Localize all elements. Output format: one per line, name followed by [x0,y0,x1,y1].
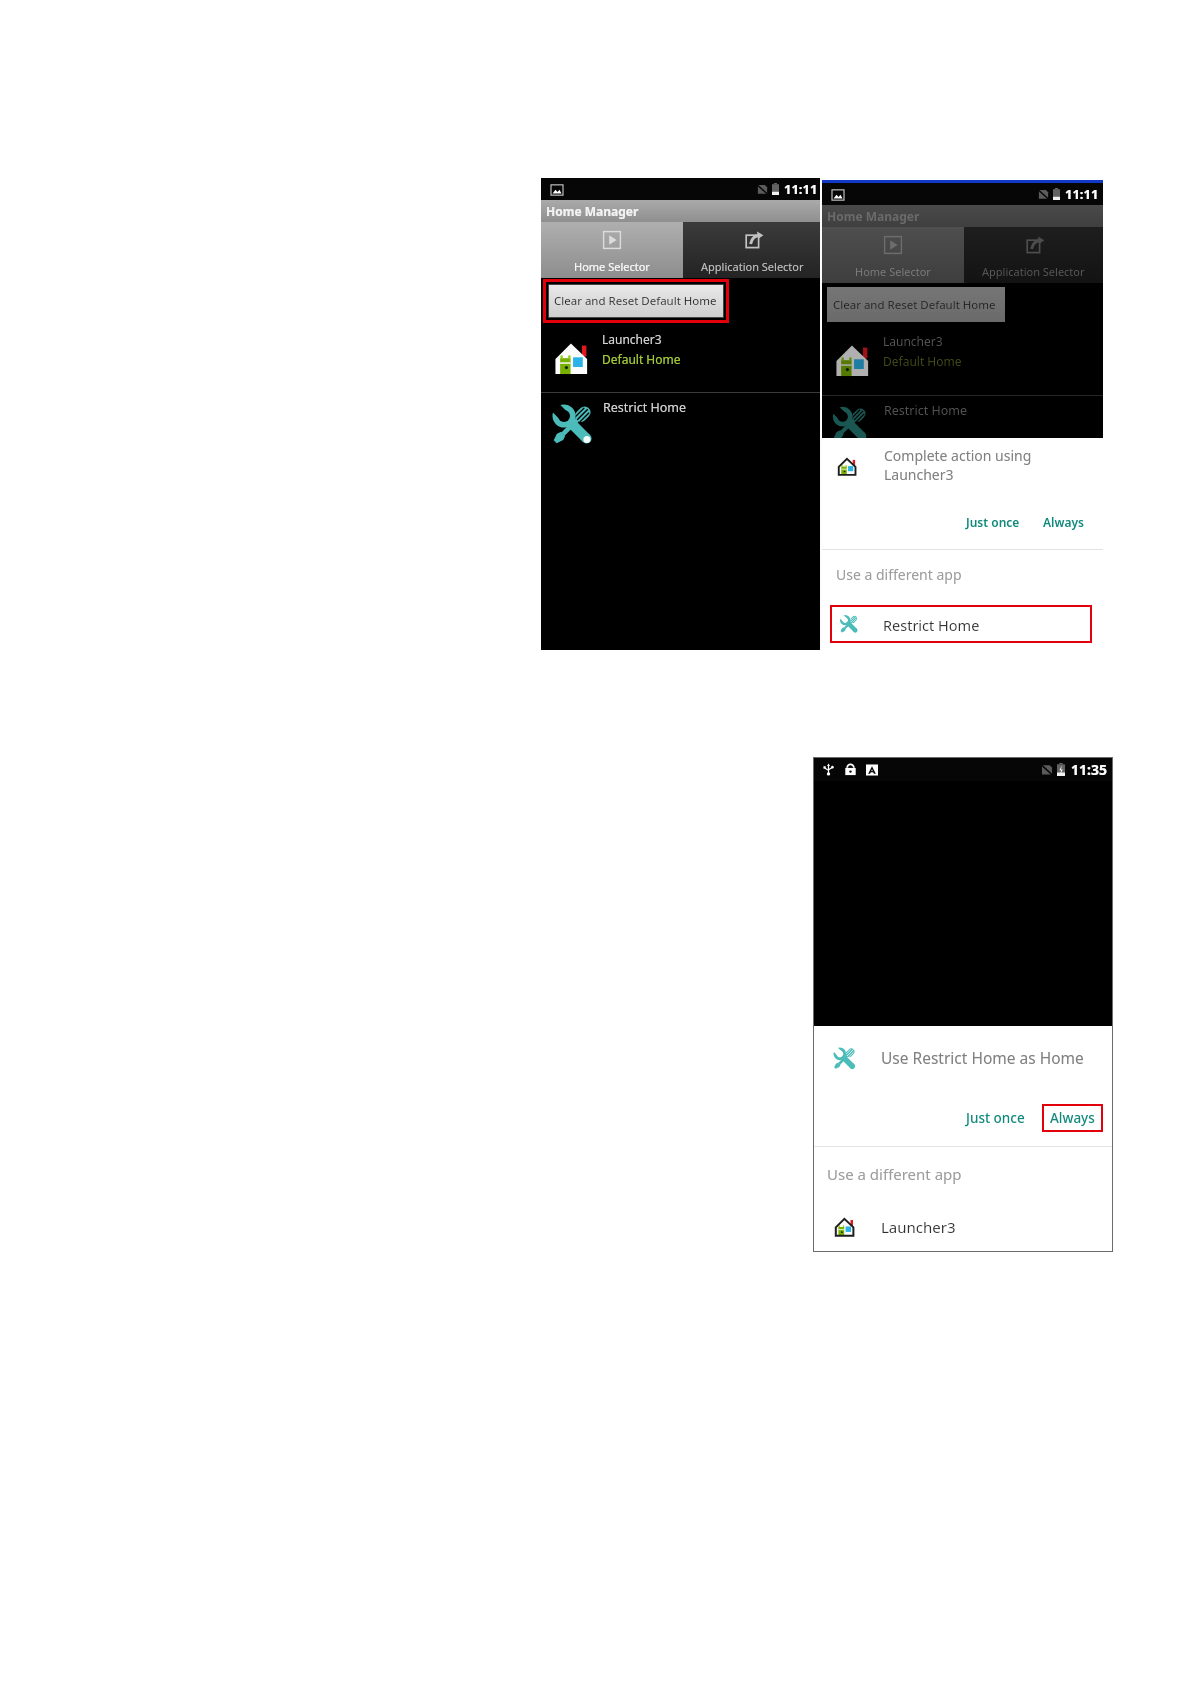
staticText: Application Selector [982,264,1085,279]
staticText: Restrict Home [603,399,687,416]
staticText: Default Home [602,351,681,367]
button[interactable]: Always [1038,511,1089,533]
button[interactable]: Just once [961,511,1025,533]
button[interactable]: Always [1042,1104,1103,1132]
staticText: Application Selector [701,259,804,274]
button[interactable]: Launcher3 [541,324,822,392]
button[interactable]: Launcher3 [813,1207,1113,1247]
staticText: Clear and Reset Default Home [554,293,717,309]
staticText: Always [1050,1109,1095,1127]
staticText: Just once [966,1109,1025,1127]
staticText: Use a different app [836,565,962,584]
staticText: Just once [966,514,1020,530]
staticText: Always [1043,514,1084,530]
staticText: Home Selector [855,264,931,279]
staticText: Launcher3 [602,331,662,347]
button[interactable]: Home Selector tab [541,222,683,278]
staticText: Restrict Home [884,402,968,419]
button[interactable]: Restrict Home [541,393,822,455]
staticText: Launcher3 [883,333,943,349]
button[interactable]: Application Selector tab [683,222,822,278]
staticText: Use a different app [827,1164,962,1184]
staticText: 11:11 [784,180,818,198]
staticText: Clear and Reset Default Home [833,297,996,313]
staticText: 11:11 [1065,185,1099,203]
staticText: Home Manager [546,203,639,219]
button[interactable]: Clear and Reset Default Home [827,287,1005,322]
button[interactable]: Application Selector tab [964,227,1103,283]
staticText: Complete action using Launcher3 [884,446,1032,484]
staticText: Default Home [883,353,962,369]
staticText: Launcher3 [881,1217,956,1237]
button[interactable]: Restrict Home [830,605,1092,643]
button[interactable]: Home Selector tab [822,227,964,283]
staticText: 11:35 [1071,760,1107,779]
staticText: Restrict Home [883,615,980,635]
button[interactable]: Clear and Reset Default Home [548,284,724,318]
button[interactable]: Just once [961,1105,1030,1131]
staticText: Home Manager [827,208,920,224]
staticText: Use Restrict Home as Home [881,1047,1084,1068]
staticText: Home Selector [574,259,650,274]
